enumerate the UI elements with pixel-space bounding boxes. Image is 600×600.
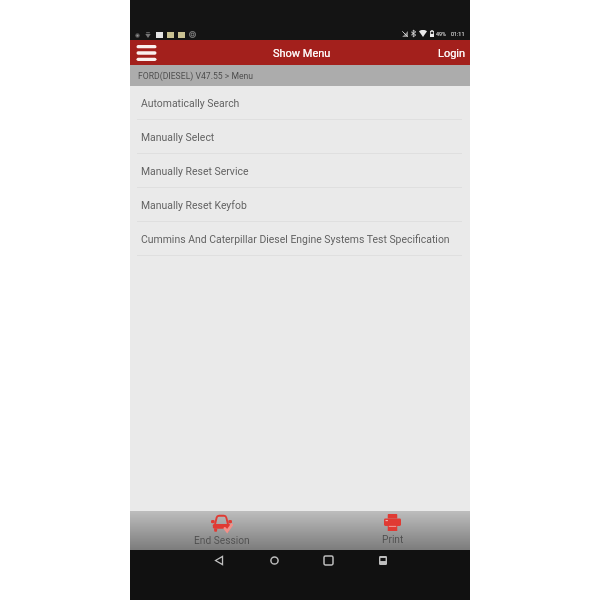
staticText: 01:11 <box>451 31 465 37</box>
button[interactable]: Recent apps <box>318 550 338 570</box>
button[interactable]: Cummins And Caterpillar Diesel Engine Sy… <box>130 222 470 256</box>
button[interactable]: Automatically Search <box>130 86 470 120</box>
button[interactable]: Back <box>209 550 229 570</box>
button[interactable]: Manually Select <box>130 120 470 154</box>
button[interactable]: Manually Reset Service <box>130 154 470 188</box>
staticText: 49% <box>436 31 447 37</box>
staticText: End Session <box>194 535 250 547</box>
staticText: Manually Reset Keyfob <box>141 199 247 211</box>
staticText: Print <box>382 534 404 546</box>
staticText: Manually Reset Service <box>141 165 249 177</box>
staticText: FORD(DIESEL) V47.55 > Menu <box>138 71 254 81</box>
staticText: Show Menu <box>273 47 331 60</box>
staticText: Login <box>438 47 466 60</box>
button[interactable]: Login <box>430 40 470 65</box>
staticText: Manually Select <box>141 131 215 143</box>
button[interactable]: Home <box>264 550 284 570</box>
button[interactable]: Screenshot <box>373 550 393 570</box>
button[interactable]: Print <box>337 511 448 550</box>
button[interactable]: End Session <box>166 511 277 550</box>
button[interactable]: Manually Reset Keyfob <box>130 188 470 222</box>
staticText: Cummins And Caterpillar Diesel Engine Sy… <box>141 233 450 245</box>
button[interactable]: Open navigation menu <box>130 40 162 65</box>
staticText: Automatically Search <box>141 97 240 109</box>
